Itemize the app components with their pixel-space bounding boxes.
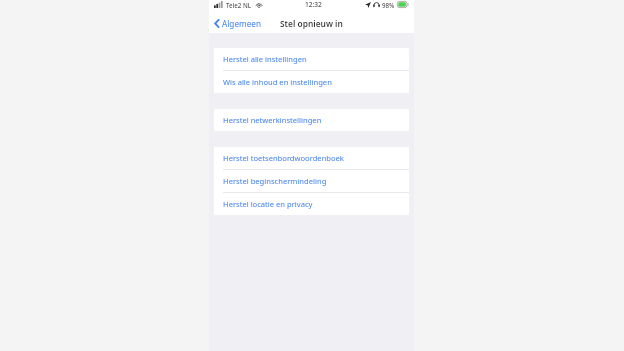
staticText: Stel opnieuw in [280, 18, 343, 29]
staticText: Wis alle inhoud en instellingen [223, 77, 332, 87]
staticText: Herstel toetsenbordwoordenboek [223, 153, 344, 163]
staticText: Herstel netwerkinstellingen [223, 115, 322, 125]
button[interactable]: Herstel locatie en privacy [214, 193, 409, 215]
button[interactable]: Terug [214, 18, 261, 29]
staticText: Tele2 NL [226, 1, 252, 9]
button[interactable]: Herstel beginschermindeling [214, 170, 409, 192]
staticText: 98% [382, 1, 395, 9]
button[interactable]: Herstel alle instellingen [214, 48, 409, 70]
staticText: Algemeen [222, 18, 261, 29]
staticText: Herstel alle instellingen [223, 54, 307, 64]
staticText: Herstel beginschermindeling [223, 176, 327, 186]
staticText: 12:32 [305, 0, 322, 9]
button[interactable]: Wis alle inhoud en instellingen [214, 71, 409, 93]
other: Terug [214, 19, 219, 28]
button[interactable]: Herstel toetsenbordwoordenboek [214, 147, 409, 169]
button[interactable]: Herstel netwerkinstellingen [214, 109, 409, 131]
staticText: Herstel locatie en privacy [223, 199, 313, 209]
